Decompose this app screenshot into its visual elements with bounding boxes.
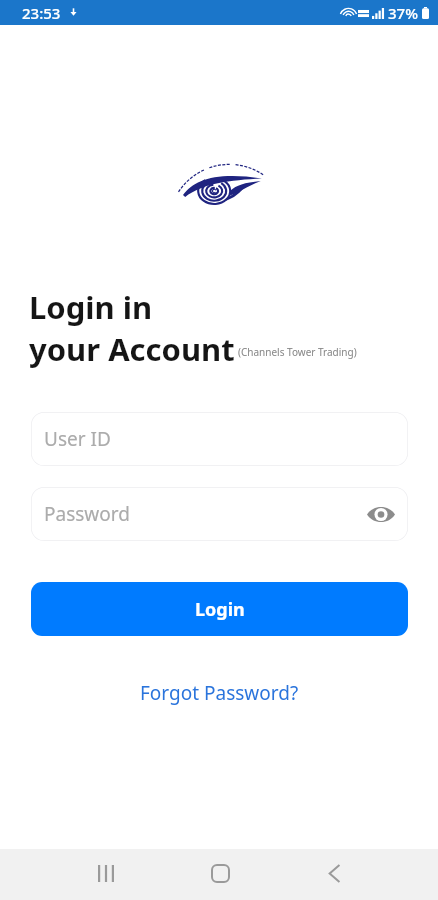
button[interactable]: Password <box>31 487 408 541</box>
staticText: 23:53 <box>22 3 61 23</box>
staticText: Forgot Password? <box>140 680 299 706</box>
button[interactable]: Show password <box>366 499 396 529</box>
staticText: Password <box>44 501 130 527</box>
staticText: Login <box>195 597 245 622</box>
button[interactable]: User ID <box>31 412 408 466</box>
staticText: (Channels Tower Trading) <box>238 345 357 359</box>
staticText: 37% <box>388 3 418 23</box>
staticText: Login in <box>29 286 153 328</box>
button[interactable]: Back <box>304 848 364 899</box>
staticText: your Account <box>29 328 235 370</box>
button[interactable]: Home <box>190 848 250 899</box>
staticText: User ID <box>44 426 111 452</box>
button[interactable]: Login <box>31 582 408 636</box>
button[interactable]: Recents <box>76 848 136 899</box>
button[interactable]: Forgot Password? <box>134 677 305 709</box>
